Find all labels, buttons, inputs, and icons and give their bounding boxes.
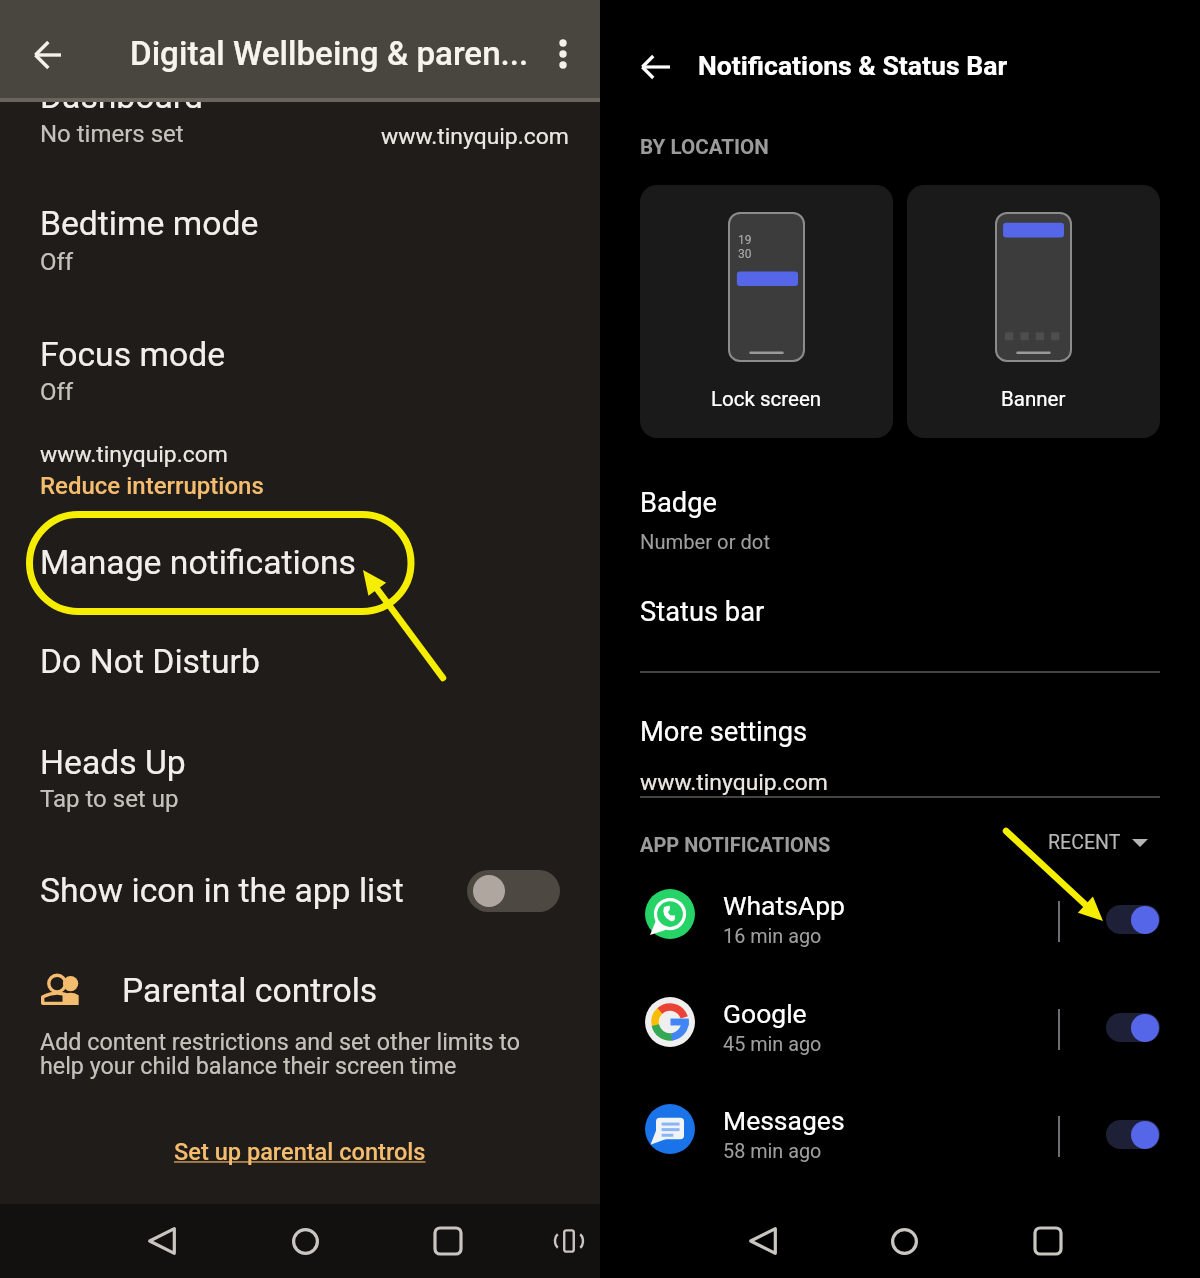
button[interactable]: RECENT <box>1036 820 1162 864</box>
button[interactable]: Manage notifications <box>0 522 600 606</box>
button[interactable]: WhatsApp <box>600 874 1200 954</box>
button[interactable]: Home <box>872 1209 936 1273</box>
button[interactable]: Back <box>130 1209 194 1273</box>
staticText: Messages <box>723 1105 845 1136</box>
button[interactable]: Status bar <box>600 588 1200 630</box>
staticText: www.tinyquip.com <box>640 769 828 796</box>
staticText: Off <box>40 378 74 406</box>
staticText: Show icon in the app list <box>40 871 404 910</box>
button[interactable]: Banner <box>907 185 1160 438</box>
staticText: Notifications & Status Bar <box>698 50 1008 81</box>
button[interactable]: Messages notifications toggle <box>1098 1106 1168 1152</box>
staticText: 19 <box>738 233 752 247</box>
button[interactable]: Vibrate mode <box>537 1209 601 1273</box>
button[interactable]: Badge <box>600 479 1200 554</box>
staticText: Google <box>723 998 807 1029</box>
button[interactable]: More options <box>535 26 591 82</box>
staticText: RECENT <box>1048 831 1121 854</box>
button[interactable]: Back <box>731 1209 795 1273</box>
staticText: Number or dot <box>640 530 770 554</box>
staticText: Set up parental controls <box>174 1138 426 1166</box>
button[interactable]: Focus mode <box>0 326 600 407</box>
staticText: Manage notifications <box>40 543 356 582</box>
staticText: www.tinyquip.com <box>40 441 228 468</box>
staticText: Heads Up <box>40 743 186 782</box>
staticText: Off <box>40 248 74 276</box>
button[interactable]: Messages <box>600 1089 1200 1169</box>
button[interactable]: Google <box>600 982 1200 1062</box>
staticText: Badge <box>640 487 718 519</box>
button[interactable]: Google notifications toggle <box>1098 999 1168 1045</box>
button[interactable]: More settings <box>600 708 1200 750</box>
button[interactable]: 19 <box>640 185 893 438</box>
staticText: BY LOCATION <box>640 135 769 159</box>
staticText: help your child balance their screen tim… <box>40 1052 457 1079</box>
staticText: www.tinyquip.com <box>381 123 569 150</box>
button[interactable]: Dashboard <box>0 60 600 148</box>
staticText: Banner <box>1001 387 1066 411</box>
staticText: 58 min ago <box>723 1140 822 1163</box>
staticText: Dashboard <box>40 77 203 116</box>
staticText: Focus mode <box>40 335 226 374</box>
button[interactable]: Set up parental controls <box>0 1124 600 1178</box>
staticText: No timers set <box>40 120 184 148</box>
staticText: More settings <box>640 716 808 748</box>
button[interactable]: Parental controls <box>0 962 600 1024</box>
staticText: Do Not Disturb <box>40 642 260 681</box>
staticText: WhatsApp <box>723 890 845 921</box>
staticText: Reduce interruptions <box>40 472 264 500</box>
staticText: Status bar <box>640 596 765 628</box>
staticText: 30 <box>738 247 752 261</box>
staticText: 45 min ago <box>723 1033 822 1056</box>
button[interactable]: Back <box>11 19 83 91</box>
button[interactable]: Recent apps <box>416 1209 480 1273</box>
button[interactable]: Show icon in the app list <box>0 858 600 924</box>
staticText: Digital Wellbeing & paren... <box>130 34 529 73</box>
staticText: 16 min ago <box>723 925 822 948</box>
button[interactable]: WhatsApp notifications toggle <box>1098 891 1168 937</box>
staticText: Parental controls <box>122 971 378 1010</box>
button[interactable]: Show icon in the app list <box>467 870 560 912</box>
staticText: Tap to set up <box>40 785 179 813</box>
button[interactable]: Do Not Disturb <box>0 622 600 698</box>
button[interactable]: Bedtime mode <box>0 195 600 277</box>
button[interactable]: Heads Up <box>0 734 600 814</box>
button[interactable]: Back <box>626 38 684 96</box>
staticText: Add content restrictions and set other l… <box>40 1028 521 1055</box>
staticText: Lock screen <box>711 387 822 411</box>
button[interactable]: Recent apps <box>1016 1209 1080 1273</box>
button[interactable]: Home <box>273 1209 337 1273</box>
staticText: APP NOTIFICATIONS <box>640 833 831 856</box>
staticText: Bedtime mode <box>40 204 259 243</box>
